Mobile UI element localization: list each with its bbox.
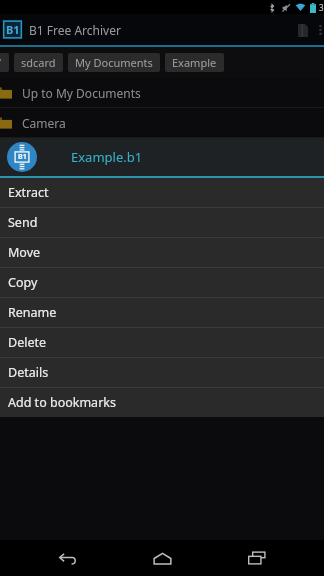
- button[interactable]: Details: [0, 358, 324, 387]
- button[interactable]: /: [0, 53, 9, 72]
- staticText: Rename: [8, 304, 57, 321]
- button[interactable]: Move: [0, 238, 324, 267]
- staticText: Move: [8, 244, 41, 261]
- button[interactable]: Camera: [0, 108, 324, 137]
- staticText: Extract: [8, 184, 49, 201]
- button[interactable]: Send: [0, 208, 324, 237]
- staticText: Copy: [8, 274, 38, 291]
- button[interactable]: Home: [134, 540, 190, 576]
- staticText: Add to bookmarks: [8, 394, 116, 411]
- staticText: B1: [18, 152, 27, 162]
- button[interactable]: Delete: [0, 328, 324, 357]
- staticText: Example.b1: [71, 148, 143, 166]
- button[interactable]: Up to My Documents: [0, 78, 324, 107]
- button[interactable]: Rename: [0, 298, 324, 327]
- button[interactable]: Example: [165, 53, 224, 72]
- button[interactable]: Back: [39, 540, 95, 576]
- staticText: 3: [319, 2, 324, 13]
- staticText: sdcard: [21, 55, 56, 70]
- button[interactable]: Extract: [0, 178, 324, 207]
- staticText: Up to My Documents: [22, 85, 141, 101]
- button[interactable]: Add to bookmarks: [0, 388, 324, 417]
- button[interactable]: B1: [0, 138, 324, 176]
- staticText: My Documents: [75, 55, 153, 70]
- staticText: Send: [8, 214, 38, 231]
- button[interactable]: My Documents: [68, 53, 160, 72]
- button[interactable]: Copy: [0, 268, 324, 297]
- button[interactable]: App icon: [2, 19, 23, 40]
- staticText: Details: [8, 364, 49, 381]
- staticText: /: [0, 55, 2, 70]
- staticText: Example: [172, 55, 217, 70]
- staticText: B1 Free Archiver: [29, 22, 121, 38]
- button[interactable]: New archive: [290, 17, 316, 43]
- staticText: Camera: [22, 115, 66, 131]
- button[interactable]: sdcard: [14, 53, 63, 72]
- staticText: Delete: [8, 334, 47, 351]
- staticText: B1: [6, 22, 20, 37]
- button[interactable]: Recent apps: [229, 540, 285, 576]
- button[interactable]: More options: [316, 14, 324, 45]
